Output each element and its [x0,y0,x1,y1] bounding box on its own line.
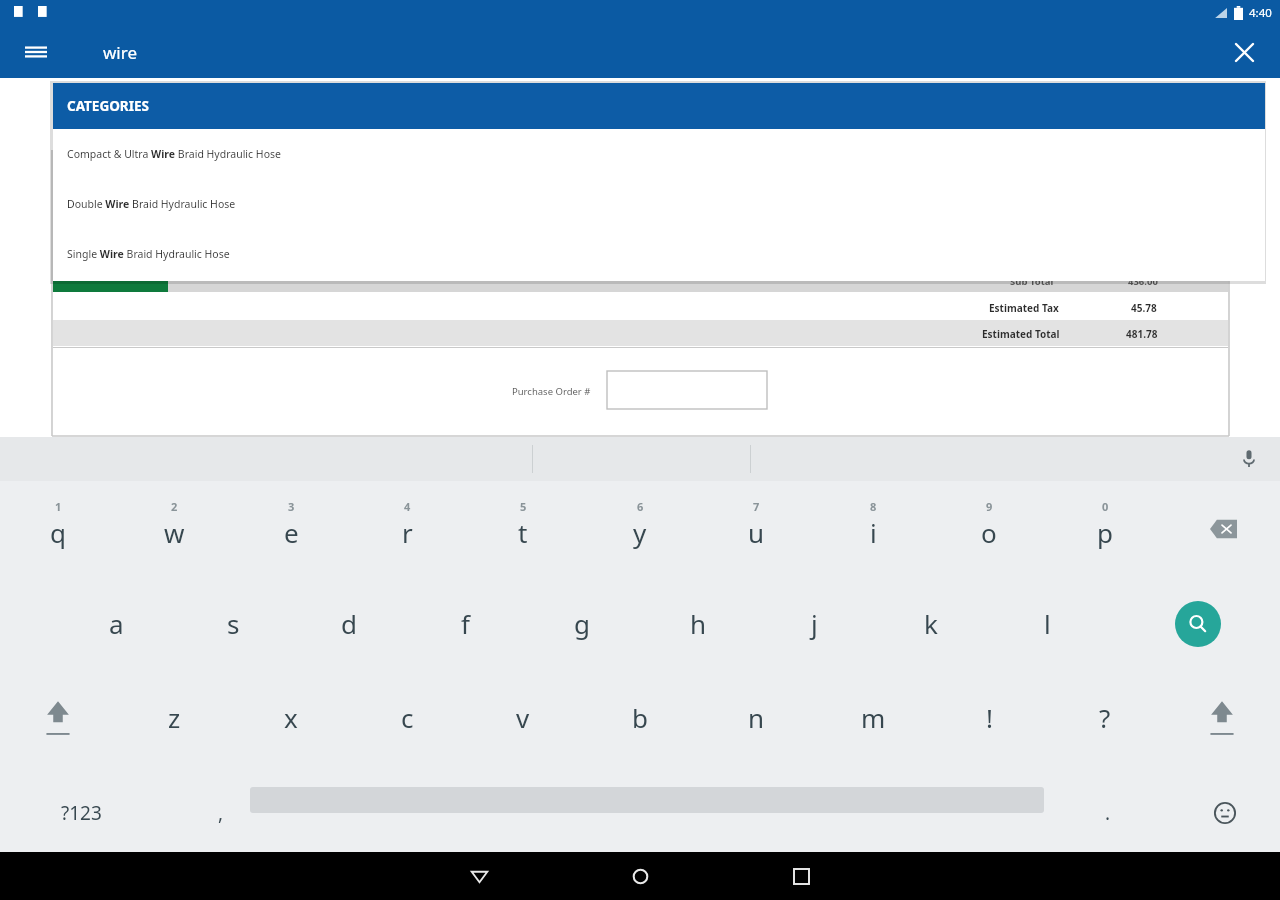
staticText: 4 [404,499,411,514]
staticText: 7 [753,499,760,514]
button[interactable]: a [58,577,174,670]
staticText: n [748,700,765,735]
button[interactable]: Emoji [1180,765,1270,860]
staticText: k [924,606,938,641]
button[interactable]: 7 [698,481,814,577]
button[interactable]: 3 [233,481,349,577]
staticText: 436.00 [1128,275,1158,288]
button[interactable]: Backspace [1164,481,1280,577]
button[interactable]: 5 [465,481,581,577]
staticText: m [861,700,886,735]
button[interactable]: 1 [0,481,116,577]
button[interactable]: z [116,670,232,765]
staticText: ? [1099,700,1111,735]
staticText: x [284,700,298,735]
button[interactable]: Single Wire Braid Hydraulic Hose [53,229,1265,279]
staticText: Double Wire Braid Hydraulic Hose [67,197,236,211]
staticText: 1 [55,499,62,514]
button[interactable]: ?123 [0,765,163,860]
button[interactable]: 6 [582,481,698,577]
button[interactable]: Compact & Ultra Wire Braid Hydraulic Hos… [53,129,1265,179]
staticText: f [461,606,470,641]
button[interactable]: s [175,577,291,670]
staticText: r [402,515,413,550]
button[interactable]: Shift right [1164,670,1280,765]
staticText: , [218,800,224,826]
button[interactable]: Open navigation menu [12,28,60,76]
button[interactable]: l [989,577,1105,670]
staticText: 2 [171,499,178,514]
staticText: ! [986,700,993,735]
button[interactable]: j [756,577,872,670]
staticText: 4:40 [1249,5,1272,21]
staticText: o [981,515,997,550]
staticText: 3 [288,499,295,514]
staticText: c [401,700,414,735]
button[interactable]: b [582,670,698,765]
staticText: CATEGORIES [67,97,149,115]
staticText: a [109,606,124,641]
button[interactable]: d [291,577,407,670]
staticText: 9 [986,499,993,514]
staticText: 5 [520,499,527,514]
staticText: u [748,515,765,550]
button[interactable]: Back [455,852,503,900]
staticText: Sub Total [1010,275,1054,288]
button[interactable]: 2 [116,481,232,577]
staticText: wire [103,41,138,64]
button[interactable]: Double Wire Braid Hydraulic Hose [53,179,1265,229]
button[interactable]: Recent apps [777,852,825,900]
button[interactable]: 4 [349,481,465,577]
button[interactable]: 8 [815,481,931,577]
button[interactable]: v [465,670,581,765]
staticText: ?123 [61,800,102,826]
button[interactable]: g [524,577,640,670]
button[interactable]: ! [931,670,1047,765]
staticText: Single Wire Braid Hydraulic Hose [67,247,230,261]
staticText: t [518,515,528,550]
button[interactable]: c [349,670,465,765]
staticText: . [1105,800,1111,826]
button[interactable]: Voice input [1232,442,1266,476]
button[interactable]: n [698,670,814,765]
button[interactable]: 9 [931,481,1047,577]
staticText: Purchase Order # [512,385,591,398]
staticText: y [633,515,647,550]
staticText: Compact & Ultra Wire Braid Hydraulic Hos… [67,147,281,161]
staticText: 6 [637,499,644,514]
staticText: b [632,700,648,735]
button[interactable] [53,270,168,292]
button[interactable]: Search [1115,577,1280,670]
button[interactable]: k [873,577,989,670]
staticText: e [284,515,299,550]
button[interactable]: Close search [1220,28,1268,76]
staticText: w [164,515,185,550]
staticText: p [1097,515,1113,550]
staticText: 8 [870,499,877,514]
button[interactable]: m [815,670,931,765]
button[interactable]: f [407,577,523,670]
staticText: Estimated Tax [989,301,1059,315]
staticText: i [870,515,877,550]
staticText: h [690,606,707,641]
button[interactable]: . [1060,765,1155,860]
staticText: 0 [1102,499,1109,514]
staticText: z [168,700,181,735]
button[interactable]: 0 [1047,481,1163,577]
button[interactable]: x [233,670,349,765]
button[interactable] [607,371,767,409]
staticText: v [516,700,530,735]
button[interactable]: , [163,765,279,860]
staticText: g [574,606,590,641]
staticText: Estimated Total [982,327,1060,341]
staticText: d [341,606,357,641]
button[interactable]: ? [1047,670,1163,765]
staticText: 45.78 [1131,301,1157,315]
staticText: j [811,606,818,641]
button[interactable]: Shift [0,670,116,765]
button[interactable]: Home [616,852,664,900]
button[interactable]: h [640,577,756,670]
staticText: s [227,606,240,641]
staticText: l [1044,606,1051,641]
